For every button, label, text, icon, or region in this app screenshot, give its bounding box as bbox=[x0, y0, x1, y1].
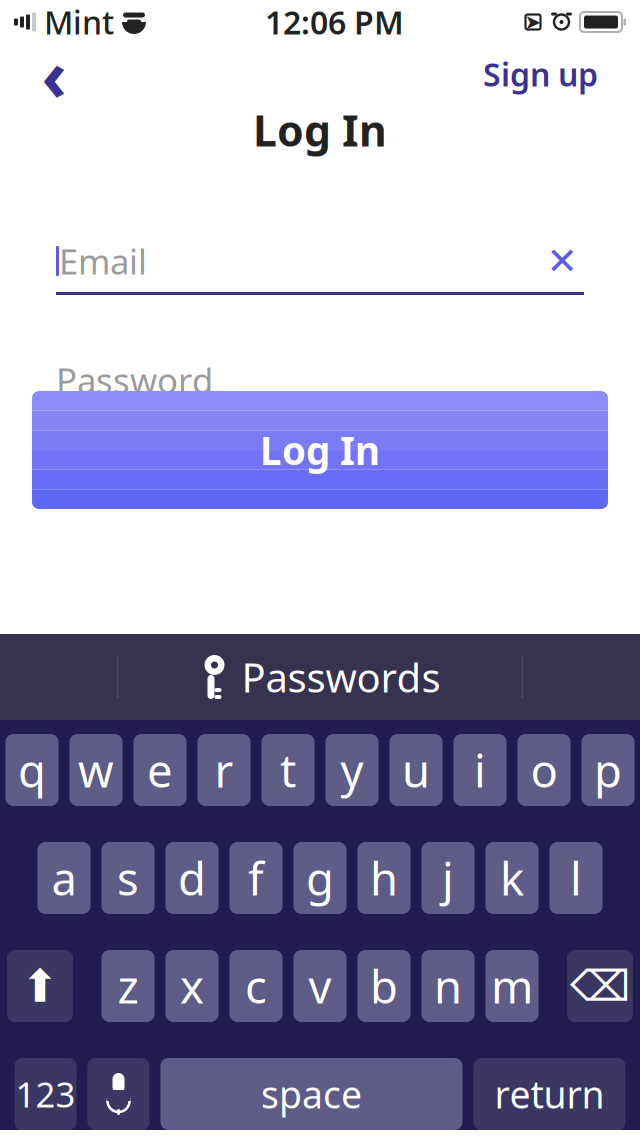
staticText: ✕ bbox=[546, 240, 577, 282]
staticText: Log In bbox=[260, 424, 380, 476]
staticText: m bbox=[491, 956, 533, 1016]
staticText: i bbox=[474, 740, 486, 800]
staticText: w bbox=[78, 740, 114, 800]
staticText: Password bbox=[56, 357, 213, 403]
staticText: ➤ bbox=[524, 11, 541, 33]
staticText: k bbox=[500, 848, 524, 908]
staticText: n bbox=[434, 956, 462, 1016]
button[interactable]: c bbox=[229, 950, 282, 1022]
button[interactable]: m bbox=[485, 950, 538, 1022]
button[interactable]: Shift bbox=[7, 950, 73, 1022]
button[interactable]: v bbox=[293, 950, 346, 1022]
staticText: f bbox=[248, 848, 264, 908]
button[interactable]: j bbox=[421, 842, 474, 914]
staticText: c bbox=[245, 956, 267, 1016]
staticText: p bbox=[594, 740, 622, 800]
staticText: e bbox=[147, 740, 173, 800]
button[interactable]: Log In bbox=[32, 391, 608, 509]
button[interactable]: t bbox=[261, 734, 314, 806]
staticText: j bbox=[442, 848, 454, 908]
button[interactable]: b bbox=[357, 950, 410, 1022]
staticText: ⬆ bbox=[21, 960, 59, 1012]
staticText: Email bbox=[59, 238, 147, 284]
button[interactable]: f bbox=[229, 842, 282, 914]
button[interactable]: p bbox=[581, 734, 634, 806]
button[interactable]: w bbox=[69, 734, 122, 806]
staticText: v bbox=[308, 956, 331, 1016]
staticText: u bbox=[402, 740, 430, 800]
staticText: t bbox=[280, 740, 296, 800]
button[interactable]: a bbox=[37, 842, 90, 914]
button[interactable]: u bbox=[389, 734, 442, 806]
staticText: o bbox=[530, 740, 557, 800]
button[interactable]: Dictate bbox=[87, 1058, 149, 1130]
button[interactable]: q bbox=[5, 734, 58, 806]
staticText: x bbox=[180, 956, 204, 1016]
button[interactable]: n bbox=[421, 950, 474, 1022]
button[interactable]: Back bbox=[32, 52, 76, 96]
button[interactable]: l bbox=[549, 842, 602, 914]
staticText: h bbox=[370, 848, 398, 908]
button[interactable]: o bbox=[517, 734, 570, 806]
staticText: s bbox=[117, 848, 139, 908]
button[interactable]: x bbox=[165, 950, 218, 1022]
staticText: y bbox=[340, 740, 363, 800]
staticText: ‹ bbox=[41, 28, 66, 120]
button[interactable]: d bbox=[165, 842, 218, 914]
button[interactable]: Delete bbox=[567, 950, 633, 1022]
staticText: ⌫ bbox=[570, 962, 630, 1010]
button[interactable]: s bbox=[101, 842, 154, 914]
staticText: Log In bbox=[253, 102, 387, 158]
button[interactable]: Sign up bbox=[473, 45, 608, 103]
staticText: 12:06 PM bbox=[265, 1, 404, 43]
staticText: 123 bbox=[15, 1071, 75, 1117]
staticText: Mint bbox=[44, 1, 114, 43]
staticText: space bbox=[261, 1069, 362, 1119]
button[interactable]: g bbox=[293, 842, 346, 914]
staticText: a bbox=[51, 848, 76, 908]
staticText: d bbox=[178, 848, 206, 908]
staticText: return bbox=[494, 1069, 604, 1119]
button[interactable]: h bbox=[357, 842, 410, 914]
staticText: r bbox=[214, 740, 233, 800]
button[interactable]: r bbox=[197, 734, 250, 806]
button[interactable]: return bbox=[473, 1058, 625, 1130]
button[interactable]: i bbox=[453, 734, 506, 806]
button[interactable]: e bbox=[133, 734, 186, 806]
staticText: q bbox=[18, 740, 46, 800]
button[interactable]: 123 bbox=[14, 1058, 76, 1130]
staticText: b bbox=[370, 956, 398, 1016]
staticText: l bbox=[570, 848, 582, 908]
staticText: Sign up bbox=[483, 53, 598, 95]
button[interactable]: space bbox=[160, 1058, 462, 1130]
button[interactable]: Passwords bbox=[183, 642, 456, 711]
button[interactable]: Clear email bbox=[540, 239, 584, 283]
staticText: g bbox=[306, 848, 334, 908]
button[interactable]: z bbox=[101, 950, 154, 1022]
button[interactable]: y bbox=[325, 734, 378, 806]
staticText: z bbox=[117, 956, 138, 1016]
staticText: Passwords bbox=[241, 650, 440, 703]
button[interactable]: k bbox=[485, 842, 538, 914]
